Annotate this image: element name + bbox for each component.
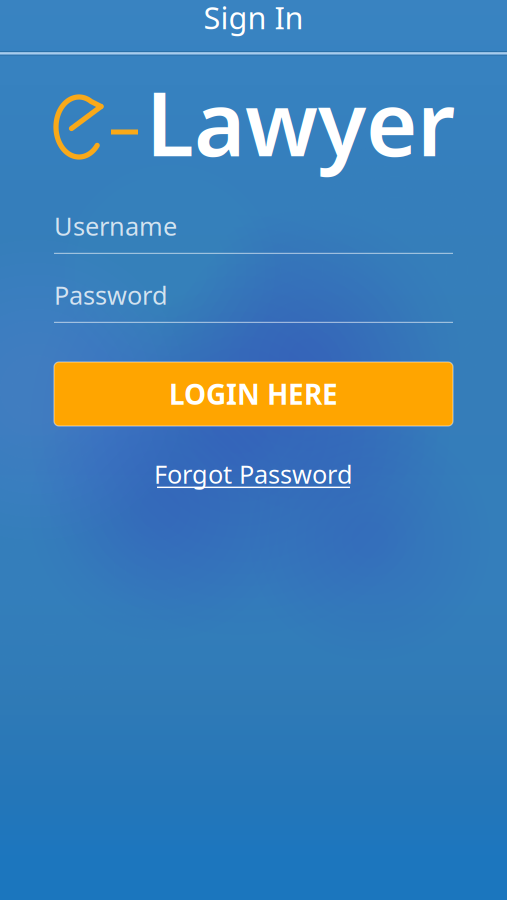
- staticText: Sign In: [203, 0, 303, 38]
- button[interactable]: Sign In: [0, 0, 507, 51]
- button[interactable]: LOGIN HERE: [54, 362, 453, 426]
- staticText: Lawyer: [146, 64, 455, 180]
- staticText: LOGIN HERE: [169, 375, 338, 413]
- staticText: Forgot Password: [154, 457, 353, 491]
- staticText: Password: [54, 278, 168, 312]
- staticText: Username: [54, 209, 177, 243]
- button[interactable]: Forgot Password: [154, 457, 353, 492]
